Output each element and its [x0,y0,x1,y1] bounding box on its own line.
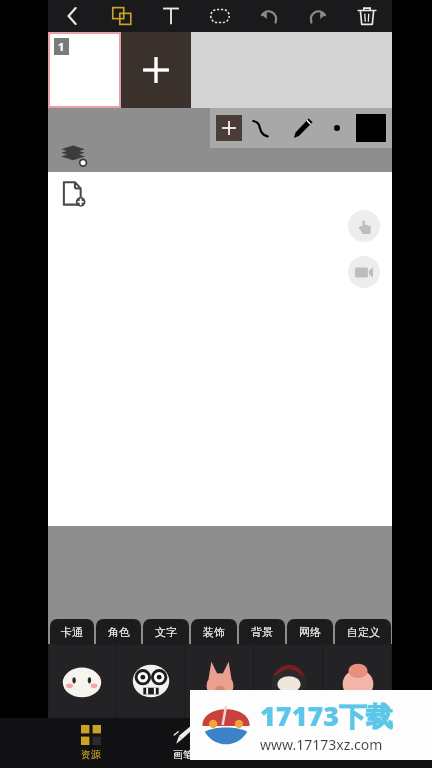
button[interactable]: Back [56,1,90,31]
button[interactable]: Undo [252,1,286,31]
button[interactable]: 自定义 [335,619,391,644]
staticText: 卡通 [61,625,83,639]
button[interactable]: Pencil [287,115,317,141]
button[interactable]: Sticker [49,645,115,717]
button[interactable]: Frame 1 [50,34,119,106]
button[interactable]: 网络 [287,619,333,644]
staticText: 装饰 [203,625,225,639]
button[interactable]: 背景 [239,619,285,644]
button[interactable]: Sticker [117,645,184,717]
staticText: 网络 [299,625,321,639]
button[interactable]: Layers [105,1,139,31]
button[interactable]: 角色 [96,619,141,644]
button[interactable]: Redo [301,1,335,31]
staticText: 17173下载 [260,697,394,734]
staticText: 角色 [108,625,130,639]
button[interactable]: Add page [58,178,88,210]
button[interactable]: Brush size [325,115,349,141]
button[interactable]: Sticker [255,645,322,717]
button[interactable]: Sticker [186,645,253,717]
button[interactable]: Delete [350,1,384,31]
staticText: 自定义 [347,625,380,639]
button[interactable]: Preview [348,256,380,288]
staticText: 1 [58,39,65,54]
button[interactable]: Text [154,1,188,31]
staticText: 文字 [155,625,177,639]
button[interactable]: Sticker [324,645,391,717]
staticText: 资源 [81,748,101,761]
button[interactable]: Select [203,1,237,31]
staticText: 背景 [251,625,273,639]
staticText: 画笔 [173,748,193,761]
staticText: www.17173xz.com [260,735,383,754]
button[interactable]: 资源 [60,718,122,768]
button[interactable]: Layers [56,140,90,170]
button[interactable]: Curve tool [250,115,280,141]
button[interactable]: 文字 [143,619,189,644]
button[interactable]: 卡通 [50,619,94,644]
button[interactable]: Pan [348,210,380,242]
button[interactable]: 画笔 [152,718,214,768]
button[interactable]: Add layer [216,115,242,141]
button[interactable]: Add frame [121,32,191,108]
button[interactable]: 装饰 [191,619,237,644]
